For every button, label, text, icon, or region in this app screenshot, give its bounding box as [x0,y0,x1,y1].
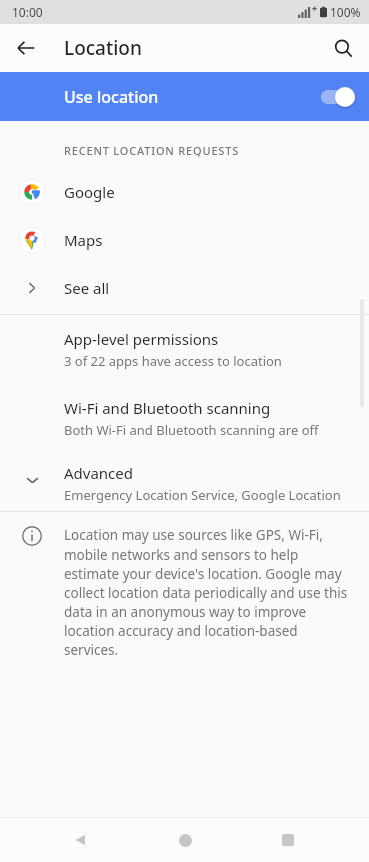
staticText: Wi-Fi and Bluetooth scanning [64,398,271,418]
staticText: Use location [64,86,311,108]
staticText: Location [64,35,142,61]
button[interactable]: See all [0,264,369,312]
staticText: 3 of 22 apps have access to location [64,352,282,370]
button[interactable]: Google [0,168,369,216]
button[interactable]: Home [163,818,207,862]
staticText: 100% [330,4,361,20]
staticText: Maps [64,230,103,250]
staticText: Advanced [64,463,134,483]
button[interactable]: Recent apps [266,818,310,862]
staticText: Google [64,182,115,202]
button[interactable]: Maps [0,216,369,264]
button[interactable]: Back [59,818,103,862]
staticText: App-level permissions [64,329,219,349]
staticText: Both Wi-Fi and Bluetooth scanning are of… [64,421,319,439]
staticText: See all [64,278,110,298]
staticText: Emergency Location Service, Google Locat… [64,486,369,504]
button[interactable]: Use location [0,72,369,121]
staticText: Location may use sources like GPS, Wi-Fi… [64,526,355,659]
staticText: 10:00 [12,4,43,20]
button[interactable]: Search [325,30,361,66]
button[interactable]: Advanced [0,451,369,509]
button[interactable]: Wi-Fi and Bluetooth scanning [0,382,369,451]
button[interactable]: App-level permissions [0,315,369,382]
staticText: RECENT LOCATION REQUESTS [64,143,239,158]
button[interactable]: Back [8,30,44,66]
